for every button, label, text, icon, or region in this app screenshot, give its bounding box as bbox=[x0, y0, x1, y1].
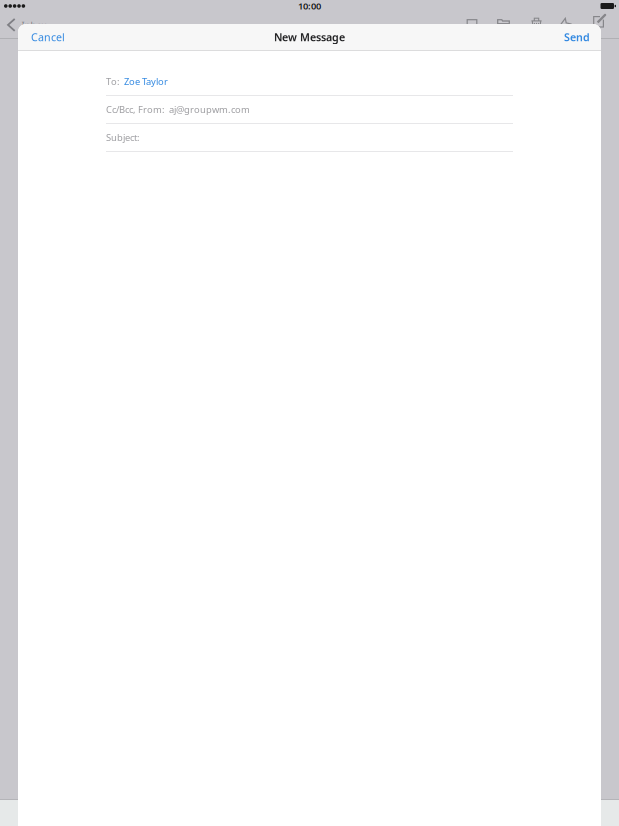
staticText: Zoe Taylor bbox=[120, 75, 168, 88]
button[interactable]: Reply bbox=[555, 12, 577, 30]
staticText: Cancel bbox=[31, 30, 65, 44]
button[interactable]: Cancel bbox=[18, 25, 73, 49]
button[interactable]: Flag bbox=[461, 14, 482, 37]
button[interactable]: New message bbox=[588, 9, 612, 33]
staticText: Send bbox=[564, 30, 590, 44]
staticText: Inbox bbox=[21, 19, 46, 31]
staticText: Cc/Bcc, From: bbox=[106, 103, 165, 116]
button[interactable]: Send bbox=[556, 25, 601, 49]
staticText: Subject: bbox=[106, 131, 140, 144]
button[interactable]: Delete bbox=[526, 12, 547, 34]
staticText: New Message bbox=[274, 30, 345, 44]
staticText: To: bbox=[106, 75, 120, 88]
staticText: aj@groupwm.com bbox=[165, 103, 250, 116]
staticText: 10:00 bbox=[298, 0, 321, 12]
button[interactable]: Inbox bbox=[0, 0, 619, 826]
button[interactable]: Move to folder bbox=[492, 14, 515, 34]
